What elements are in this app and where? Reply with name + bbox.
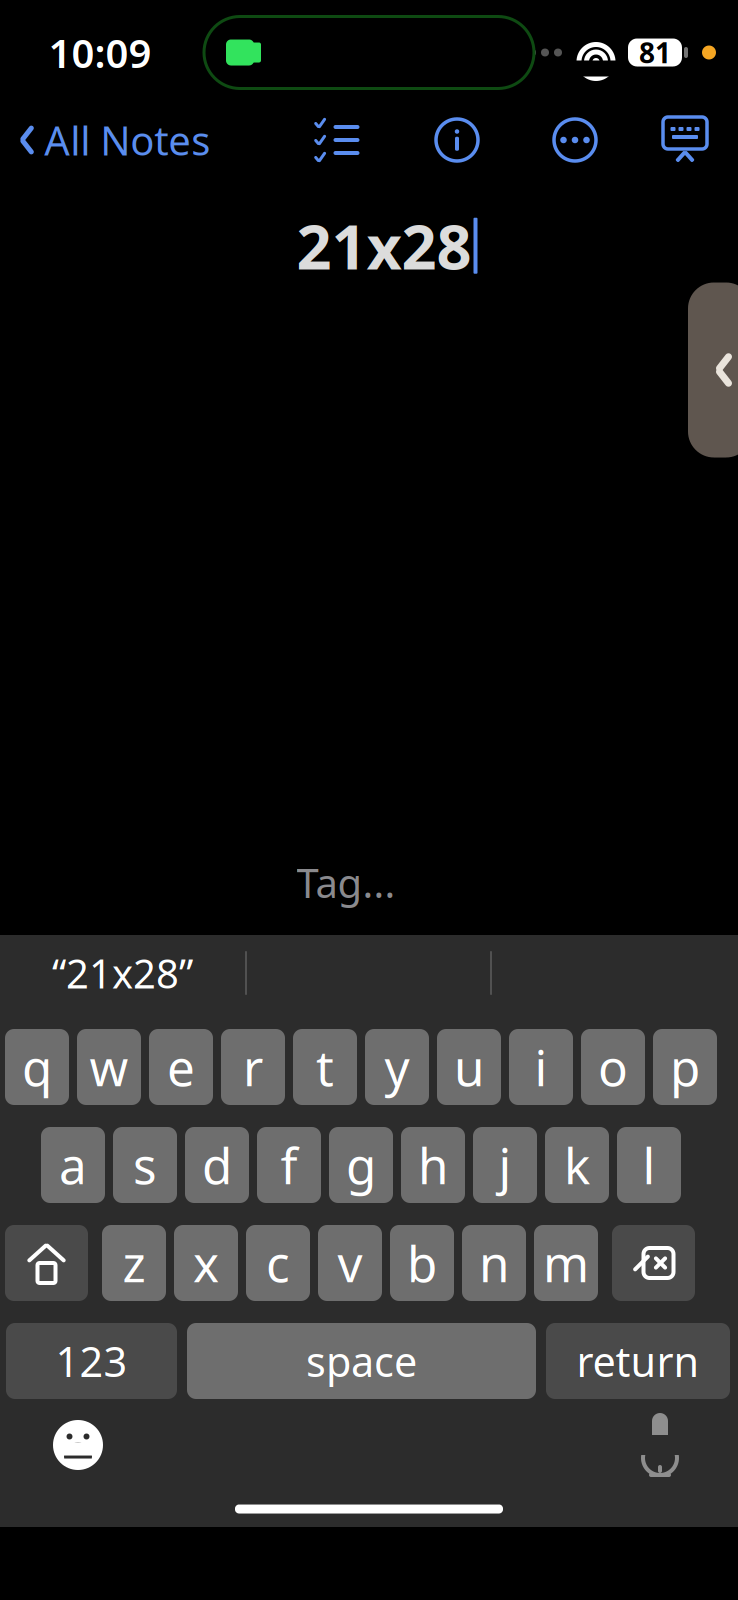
button[interactable]: Checklist xyxy=(302,110,372,170)
button[interactable]: k xyxy=(545,1127,609,1203)
staticText: l xyxy=(642,1132,655,1198)
staticText: i xyxy=(534,1034,547,1100)
staticText: a xyxy=(59,1132,87,1198)
button[interactable]: h xyxy=(401,1127,465,1203)
staticText: k xyxy=(564,1132,590,1198)
button[interactable]: f xyxy=(257,1127,321,1203)
staticText: 21x28 xyxy=(296,205,471,286)
staticText: “21x28” xyxy=(52,946,193,999)
button[interactable]: t xyxy=(293,1029,357,1105)
button[interactable]: v xyxy=(318,1225,382,1301)
staticText: t xyxy=(316,1034,334,1100)
button[interactable]: Shift xyxy=(5,1225,88,1301)
button[interactable]: return xyxy=(546,1323,730,1399)
button[interactable]: l xyxy=(617,1127,681,1203)
staticText: m xyxy=(543,1230,589,1296)
button[interactable]: Dictation xyxy=(626,1398,694,1492)
button[interactable]: “21x28” xyxy=(0,935,245,1011)
staticText: z xyxy=(122,1230,145,1296)
staticText: p xyxy=(670,1034,700,1100)
staticText: c xyxy=(266,1230,290,1296)
staticText: n xyxy=(479,1230,509,1296)
button[interactable]: n xyxy=(462,1225,526,1301)
staticText: d xyxy=(202,1132,232,1198)
button[interactable]: z xyxy=(102,1225,166,1301)
staticText: e xyxy=(167,1034,195,1100)
button[interactable]: d xyxy=(185,1127,249,1203)
button[interactable]: c xyxy=(246,1225,310,1301)
button[interactable]: Info xyxy=(424,107,490,173)
button[interactable]: 123 xyxy=(6,1323,177,1399)
button[interactable]: a xyxy=(41,1127,105,1203)
staticText: g xyxy=(346,1132,376,1198)
button[interactable]: Emoji xyxy=(38,1405,118,1485)
staticText: All Notes xyxy=(44,113,210,166)
staticText: f xyxy=(280,1132,297,1198)
button[interactable]: r xyxy=(221,1029,285,1105)
button[interactable]: g xyxy=(329,1127,393,1203)
button[interactable]: u xyxy=(437,1029,501,1105)
staticText: y xyxy=(384,1034,409,1100)
staticText: v xyxy=(337,1230,362,1296)
staticText: q xyxy=(22,1034,52,1100)
staticText: 81 xyxy=(639,34,671,71)
staticText: b xyxy=(407,1230,437,1296)
staticText: space xyxy=(306,1334,417,1388)
staticText: 10:09 xyxy=(48,26,151,79)
staticText: Tag... xyxy=(296,856,395,909)
staticText: w xyxy=(89,1034,128,1100)
button[interactable]: x xyxy=(174,1225,238,1301)
button[interactable]: s xyxy=(113,1127,177,1203)
button[interactable]: w xyxy=(77,1029,141,1105)
button[interactable]: p xyxy=(653,1029,717,1105)
staticText: 123 xyxy=(55,1334,127,1388)
button[interactable]: Hide Keyboard xyxy=(650,105,720,175)
button[interactable]: Delete xyxy=(612,1225,695,1301)
button[interactable]: m xyxy=(534,1225,598,1301)
staticText: x xyxy=(193,1230,219,1296)
staticText: j xyxy=(498,1132,511,1198)
button[interactable]: More xyxy=(542,107,608,173)
button[interactable]: q xyxy=(5,1029,69,1105)
button[interactable]: o xyxy=(581,1029,645,1105)
button[interactable]: All Notes xyxy=(0,103,210,176)
staticText: r xyxy=(243,1034,263,1100)
button[interactable]: i xyxy=(509,1029,573,1105)
staticText: h xyxy=(418,1132,448,1198)
staticText: u xyxy=(454,1034,484,1100)
staticText: s xyxy=(133,1132,157,1198)
button[interactable]: j xyxy=(473,1127,537,1203)
button[interactable]: y xyxy=(365,1029,429,1105)
button[interactable]: Show sidebar xyxy=(688,282,738,457)
staticText: return xyxy=(576,1334,699,1388)
button[interactable]: b xyxy=(390,1225,454,1301)
button[interactable]: space xyxy=(187,1323,536,1399)
button[interactable]: e xyxy=(149,1029,213,1105)
staticText: o xyxy=(598,1034,628,1100)
